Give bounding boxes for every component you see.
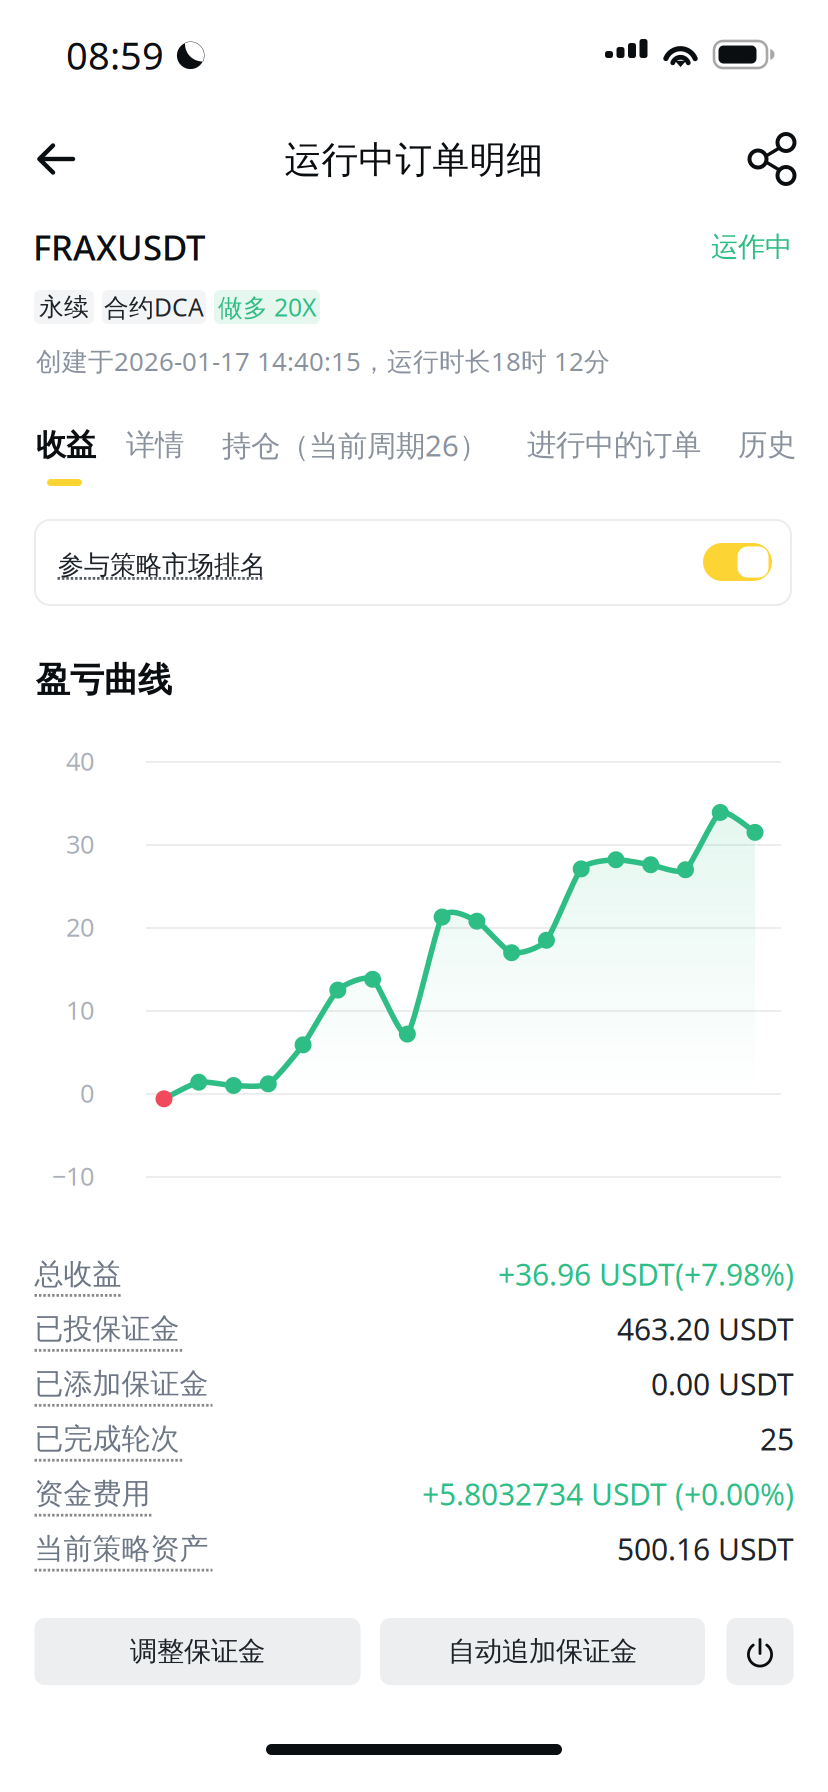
staticText: 收益 xyxy=(36,427,96,463)
staticText: 已投保证金 xyxy=(34,1311,179,1347)
staticText: 参与策略市场排名 xyxy=(58,549,266,581)
staticText: 资金费用 xyxy=(34,1476,150,1511)
staticText: 调整保证金 xyxy=(130,1635,265,1668)
staticText: 500.16 USDT xyxy=(617,1529,794,1569)
staticText: 永续 xyxy=(39,292,89,322)
staticText: 10 xyxy=(66,993,94,1027)
button[interactable]: Back xyxy=(0,0,78,78)
staticText: 创建于2026-01-17 14:40:15，运行时长18时 12分 xyxy=(36,344,610,378)
staticText: 已添加保证金 xyxy=(34,1366,208,1402)
button[interactable]: 调整保证金 xyxy=(0,0,326,67)
staticText: 进行中的订单 xyxy=(527,427,701,463)
button[interactable]: Share xyxy=(0,0,78,78)
staticText: 运作中 xyxy=(711,230,792,264)
staticText: −10 xyxy=(52,1159,94,1193)
staticText: 合约DCA xyxy=(104,291,204,323)
staticText: 持仓（当前周期26） xyxy=(222,425,488,464)
staticText: 总收益 xyxy=(34,1256,121,1292)
staticText: 20 xyxy=(66,910,94,944)
staticText: 08:59 xyxy=(66,30,164,80)
staticText: 25 xyxy=(760,1419,794,1459)
staticText: 详情 xyxy=(126,427,184,463)
staticText: +5.8032734 USDT (+0.00%) xyxy=(422,1474,794,1514)
staticText: 0 xyxy=(80,1076,94,1110)
staticText: 运行中订单明细 xyxy=(284,137,543,182)
staticText: 当前策略资产 xyxy=(34,1531,208,1566)
staticText: 30 xyxy=(66,827,94,861)
staticText: 已完成轮次 xyxy=(34,1421,179,1457)
staticText: 盈亏曲线 xyxy=(36,659,172,701)
staticText: +36.96 USDT(+7.98%) xyxy=(498,1254,794,1294)
staticText: 0.00 USDT xyxy=(651,1364,794,1404)
staticText: 自动追加保证金 xyxy=(448,1635,637,1668)
staticText: 历史 xyxy=(738,427,796,463)
button[interactable]: 自动追加保证金 xyxy=(0,0,325,67)
staticText: 做多 20X xyxy=(218,291,316,323)
staticText: FRAXUSDT xyxy=(33,224,205,270)
staticText: 463.20 USDT xyxy=(617,1309,794,1349)
staticText: 40 xyxy=(66,744,94,778)
